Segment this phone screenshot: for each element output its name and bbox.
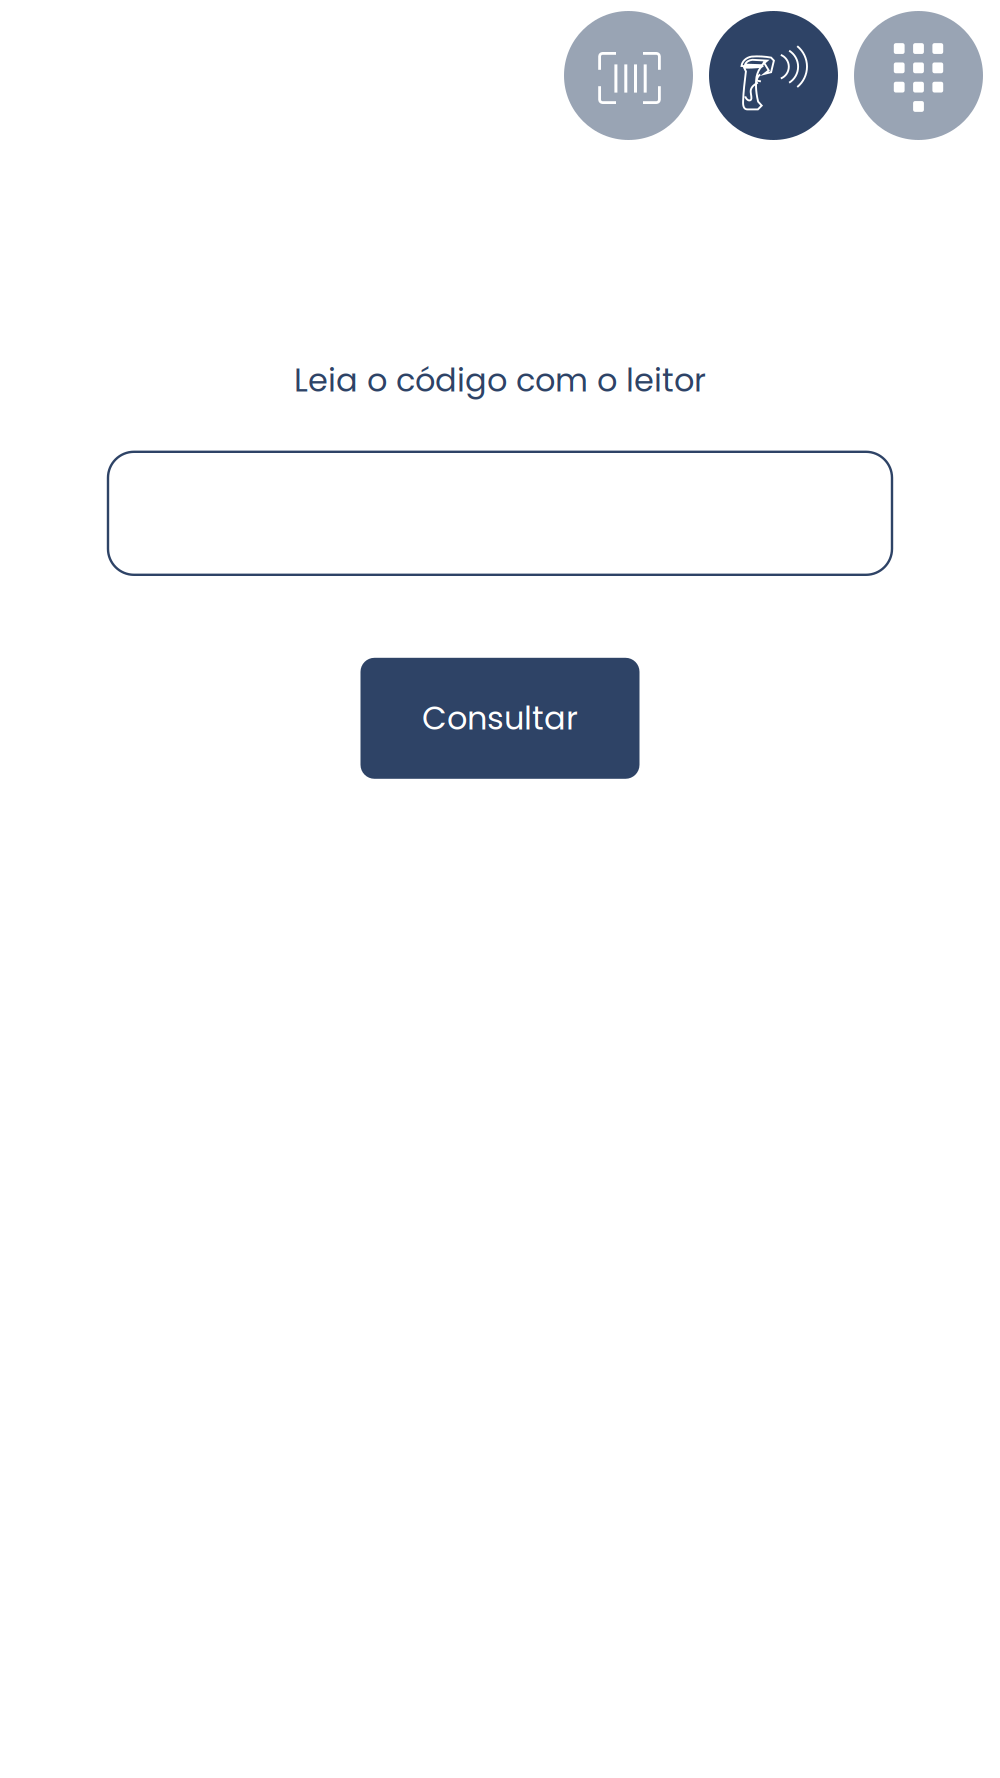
- button[interactable]: Teclado numérico: [854, 11, 983, 140]
- button[interactable]: Código: [108, 452, 892, 575]
- button[interactable]: Ler código de barras: [564, 11, 693, 140]
- staticText: Leia o código com o leitor: [294, 358, 706, 403]
- staticText: Consultar: [422, 696, 578, 741]
- button[interactable]: Consultar: [360, 658, 639, 779]
- button[interactable]: Leitor de código de barras: [709, 11, 838, 140]
